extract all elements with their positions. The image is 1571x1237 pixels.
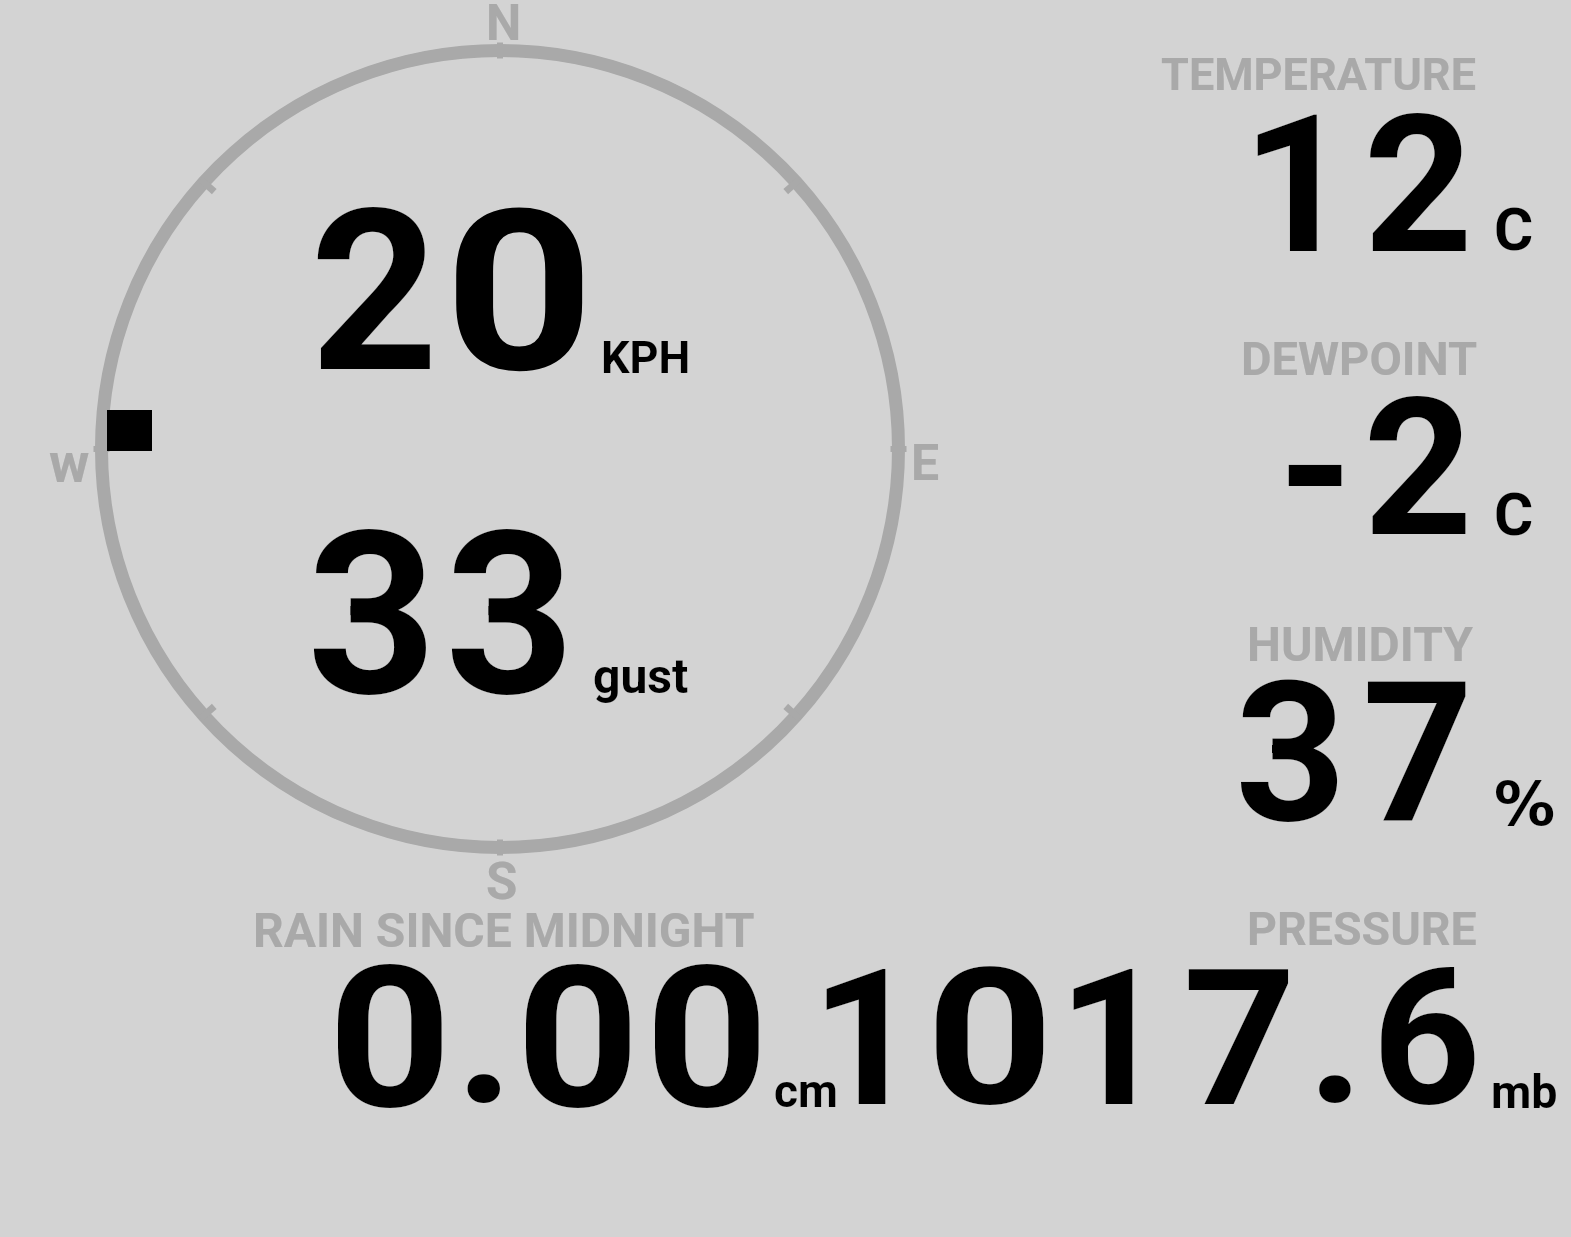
staticText: w — [49, 431, 90, 495]
staticText: 6 — [1372, 927, 1482, 1150]
staticText: 33 — [307, 483, 584, 748]
staticText: 1 — [1058, 928, 1168, 1151]
staticText: 0 — [645, 924, 769, 1154]
staticText: DEWPOINT — [1241, 331, 1478, 386]
staticText: . — [1307, 926, 1365, 1149]
staticText: 2 — [310, 161, 439, 424]
staticText: 0 — [926, 927, 1055, 1150]
button[interactable]: Temperature 12 C — [1150, 0, 1571, 310]
staticText: HUMIDITY — [1247, 616, 1473, 672]
staticText: -2 — [1278, 357, 1483, 581]
button[interactable]: Humidity 37 percent — [1150, 595, 1571, 895]
staticText: . — [455, 920, 514, 1150]
staticText: cm — [774, 1064, 838, 1118]
staticText: 37 — [1235, 640, 1490, 867]
staticText: C — [1494, 194, 1534, 264]
button[interactable]: Wind speed 20 KPH, gusting 33, from the … — [0, 0, 1150, 895]
staticText: TEMPERATURE — [1161, 48, 1476, 101]
button[interactable]: Rain since midnight 0.00 cm — [0, 895, 845, 1237]
staticText: 0 — [444, 161, 595, 424]
staticText: PRESSURE — [1247, 902, 1477, 956]
staticText: S — [486, 852, 518, 912]
staticText: N — [486, 0, 522, 53]
staticText: 7 — [1183, 928, 1297, 1151]
staticText: 12 — [1242, 74, 1486, 298]
staticText: % — [1494, 768, 1556, 839]
staticText: 0 — [328, 924, 452, 1154]
staticText: 1 — [811, 928, 921, 1151]
staticText: RAIN SINCE MIDNIGHT — [253, 902, 755, 958]
staticText: C — [1494, 479, 1534, 549]
button[interactable]: Pressure 1017.6 mb — [845, 895, 1571, 1237]
staticText: E — [911, 434, 940, 493]
staticText: KPH — [601, 331, 691, 384]
staticText: gust — [593, 648, 689, 704]
staticText: 0 — [516, 924, 640, 1154]
staticText: mb — [1491, 1065, 1558, 1119]
button[interactable]: Dewpoint -2 C — [1150, 310, 1571, 595]
